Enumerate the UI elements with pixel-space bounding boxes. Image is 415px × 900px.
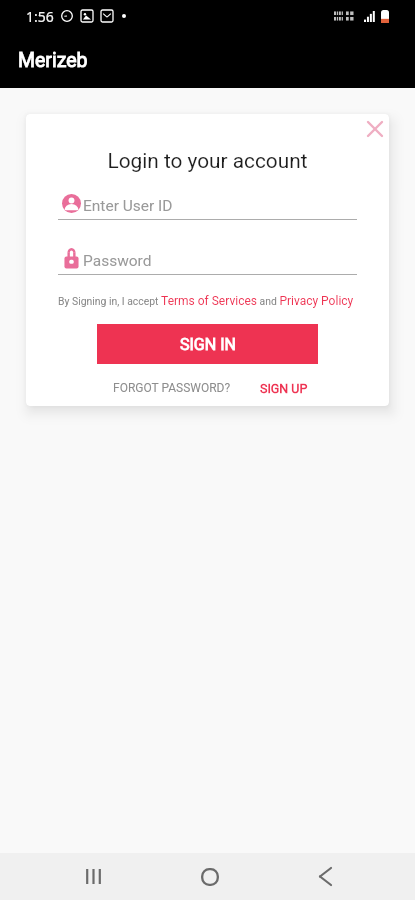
staticText: Login to your account [26,149,389,173]
button[interactable]: Home [186,853,233,900]
staticText: 1:56 [26,7,54,26]
staticText: Enter User ID [83,197,173,215]
staticText: Password [83,252,152,270]
button[interactable]: Close [360,114,389,144]
staticText: By Signing in, I accept Terms of Service… [58,294,358,308]
button[interactable]: Recent apps [70,853,117,900]
button[interactable]: SIGN UP [260,381,308,396]
staticText: SIGN UP [260,381,308,396]
button[interactable]: FORGOT PASSWORD? [113,381,231,395]
staticText: FORGOT PASSWORD? [113,381,231,395]
staticText: SIGN IN [180,335,236,354]
staticText: Merizeb [18,49,88,72]
button[interactable]: SIGN IN [97,324,318,364]
button[interactable]: Back [302,853,349,900]
